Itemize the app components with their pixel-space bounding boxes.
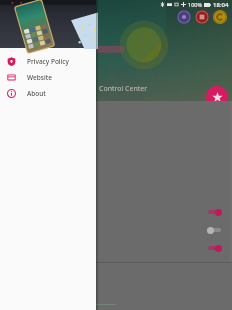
button[interactable]: Stop bbox=[195, 10, 209, 24]
button[interactable]: Favorite bbox=[206, 86, 228, 108]
button[interactable]: Website bbox=[0, 69, 96, 85]
staticText: 100% bbox=[188, 1, 203, 8]
staticText: 18:04 bbox=[213, 1, 229, 9]
button[interactable]: Privacy Policy bbox=[0, 53, 96, 69]
button[interactable]: Brightness bbox=[213, 10, 227, 24]
button[interactable]: Bluetooth bbox=[177, 10, 191, 24]
staticText: Website bbox=[27, 73, 52, 82]
button[interactable]: Toggle on bbox=[207, 208, 222, 216]
button[interactable]: About bbox=[0, 85, 96, 101]
staticText: Control Center bbox=[99, 84, 148, 94]
staticText: About bbox=[27, 89, 46, 98]
button[interactable]: Toggle off bbox=[207, 226, 222, 234]
button[interactable]: Toggle on bbox=[207, 244, 222, 252]
staticText: Privacy Policy bbox=[27, 57, 69, 66]
